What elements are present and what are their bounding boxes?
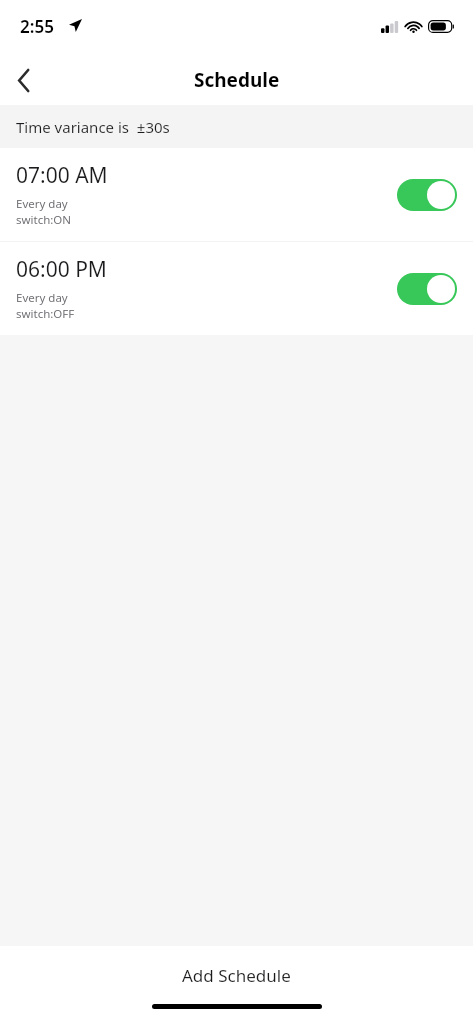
button[interactable]: Toggle schedule: [397, 179, 457, 211]
staticText: Every day: [16, 196, 68, 212]
button[interactable]: 07:00 AM: [0, 148, 473, 241]
staticText: 06:00 PM: [16, 255, 107, 284]
staticText: 2:55: [20, 15, 54, 38]
button[interactable]: 06:00 PM: [0, 242, 473, 335]
staticText: Schedule: [194, 67, 280, 93]
staticText: switch:ON: [16, 212, 72, 228]
staticText: switch:OFF: [16, 306, 75, 322]
button[interactable]: Add Schedule: [0, 946, 473, 1004]
staticText: Add Schedule: [182, 964, 291, 987]
button[interactable]: Toggle schedule: [397, 273, 457, 305]
button[interactable]: Back: [0, 56, 48, 104]
staticText: 07:00 AM: [16, 161, 108, 190]
staticText: Time variance is ±30s: [16, 117, 170, 137]
staticText: Every day: [16, 290, 68, 306]
